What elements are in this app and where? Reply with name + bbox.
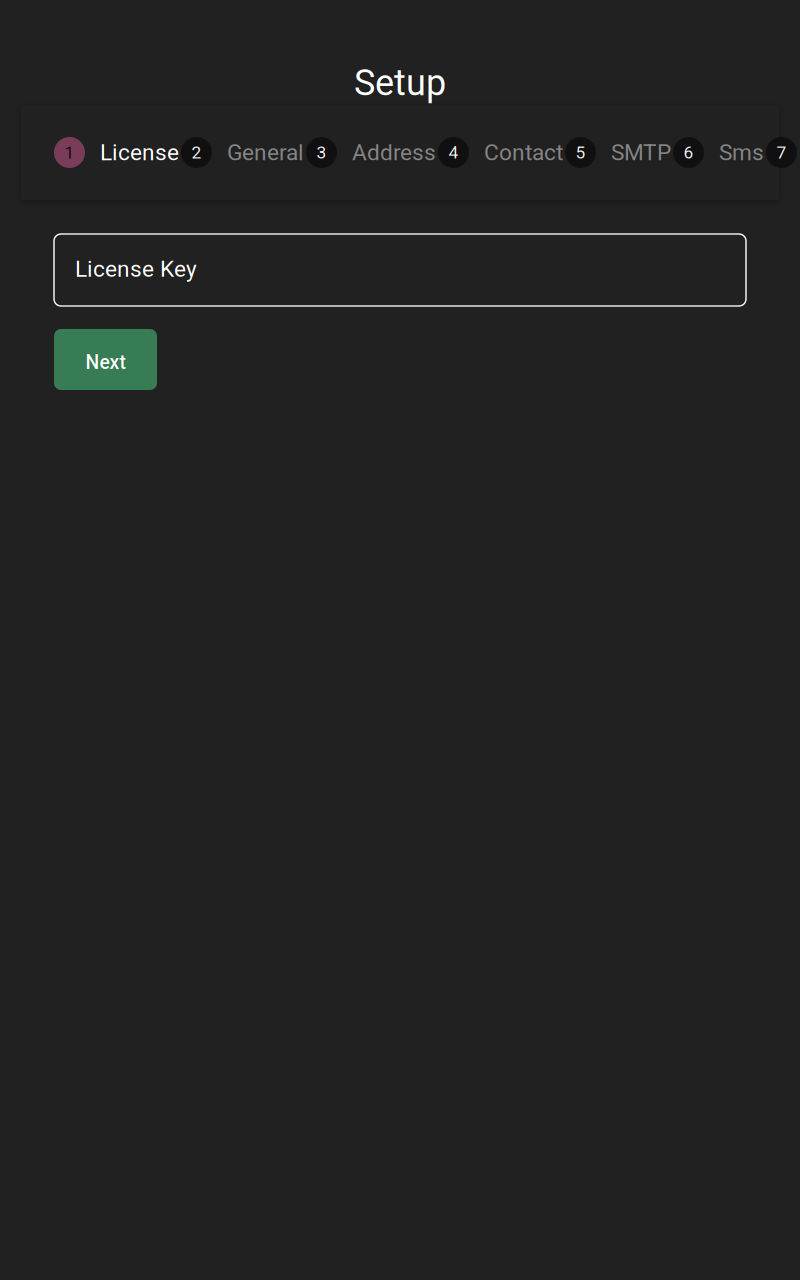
button[interactable]: 4 xyxy=(438,137,563,168)
staticText: 7 xyxy=(776,142,786,163)
staticText: License Key xyxy=(75,256,197,282)
staticText: 4 xyxy=(448,142,458,163)
staticText: Sms xyxy=(719,139,764,166)
button[interactable]: 6 xyxy=(673,137,764,168)
button[interactable]: Next xyxy=(54,329,157,390)
button[interactable]: 5 xyxy=(565,137,671,168)
button[interactable]: 2 xyxy=(181,137,304,168)
staticText: Setup xyxy=(354,62,446,104)
button[interactable]: 1 xyxy=(54,137,179,168)
staticText: Contact xyxy=(484,139,563,166)
staticText: 3 xyxy=(316,142,326,163)
button[interactable]: 3 xyxy=(306,137,436,168)
staticText: General xyxy=(227,139,304,166)
staticText: License xyxy=(100,139,179,166)
staticText: 5 xyxy=(575,142,585,163)
staticText: 1 xyxy=(64,142,74,163)
button[interactable]: License Key xyxy=(54,234,746,306)
staticText: SMTP xyxy=(611,139,671,166)
button[interactable]: Step 7 xyxy=(766,137,797,168)
staticText: 6 xyxy=(683,142,693,163)
staticText: Address xyxy=(352,139,436,166)
staticText: 2 xyxy=(191,142,201,163)
staticText: Next xyxy=(85,351,125,374)
